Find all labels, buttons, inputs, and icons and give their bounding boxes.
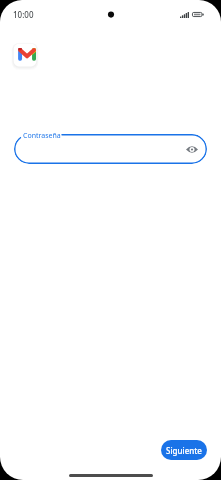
staticText: Contraseña <box>23 131 61 141</box>
staticText: Siguiente <box>166 445 202 456</box>
button[interactable]: Campo de contraseña <box>14 134 207 164</box>
button[interactable]: Siguiente <box>161 440 207 460</box>
button[interactable]: Mostrar contraseña <box>183 140 201 158</box>
staticText: 10:00 <box>13 9 34 20</box>
